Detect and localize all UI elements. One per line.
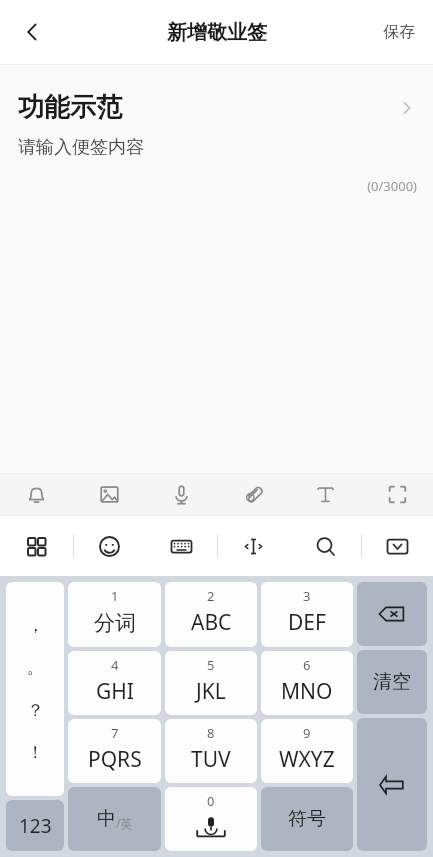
button[interactable]: Emoji <box>73 516 145 576</box>
staticText: /英 <box>116 815 133 831</box>
staticText: 6 <box>303 656 311 674</box>
staticText: 1 <box>111 587 119 605</box>
button[interactable]: Grid <box>0 516 73 576</box>
button[interactable]: 功能示范 <box>0 91 433 124</box>
button[interactable]: Cursor <box>217 516 289 576</box>
button[interactable]: Text format <box>289 474 361 515</box>
button[interactable]: 中 <box>68 787 161 851</box>
staticText: 3 <box>303 587 311 605</box>
button[interactable]: Image <box>73 474 145 515</box>
staticText: ， <box>27 615 44 636</box>
button[interactable]: Keyboard <box>145 516 217 576</box>
staticText: ABC <box>191 608 232 637</box>
staticText: 2 <box>207 587 215 605</box>
staticText: 保存 <box>383 22 415 42</box>
button[interactable]: 1 <box>68 582 161 647</box>
button[interactable]: 7 <box>68 719 161 783</box>
staticText: DEF <box>288 608 326 637</box>
staticText: 请输入便签内容 <box>18 136 144 159</box>
staticText: 123 <box>19 813 52 839</box>
button[interactable]: Search <box>289 516 361 576</box>
button[interactable]: Enter <box>357 718 427 851</box>
button[interactable]: 2 <box>165 582 257 647</box>
button[interactable]: 9 <box>261 719 353 783</box>
staticText: 符号 <box>288 807 326 831</box>
button[interactable]: 保存 <box>365 0 433 64</box>
button[interactable]: 清空 <box>357 650 427 714</box>
button[interactable]: 6 <box>261 651 353 715</box>
staticText: 清空 <box>373 670 411 694</box>
staticText: 新增敬业签 <box>167 20 267 45</box>
staticText: JKL <box>196 677 226 706</box>
button[interactable]: 符号 <box>261 787 353 851</box>
button[interactable]: 123 <box>6 800 64 851</box>
staticText: PQRS <box>88 745 142 774</box>
staticText: ？ <box>27 700 44 721</box>
button[interactable]: Attachment <box>217 474 289 515</box>
staticText: (0/3000) <box>0 177 417 195</box>
staticText: WXYZ <box>279 745 335 774</box>
staticText: MNO <box>281 677 333 706</box>
button[interactable]: Reminder <box>0 474 73 515</box>
button[interactable]: Voice <box>145 474 217 515</box>
button[interactable]: Fullscreen <box>361 474 433 515</box>
staticText: 。 <box>27 657 44 678</box>
staticText: GHI <box>96 677 134 706</box>
staticText: 9 <box>303 724 311 742</box>
staticText: 4 <box>111 656 119 674</box>
button[interactable]: Backspace <box>357 582 427 646</box>
button[interactable]: 0 <box>165 787 257 851</box>
button[interactable]: Back <box>6 6 58 58</box>
staticText: 中 <box>97 807 116 831</box>
button[interactable]: 8 <box>165 719 257 783</box>
button[interactable]: 3 <box>261 582 353 647</box>
staticText: 5 <box>207 656 215 674</box>
staticText: ！ <box>27 742 44 763</box>
staticText: 功能示范 <box>18 91 399 124</box>
staticText: 分词 <box>94 610 136 636</box>
button[interactable]: 5 <box>165 651 257 715</box>
button[interactable]: Hide keyboard <box>361 516 433 576</box>
button[interactable]: 4 <box>68 651 161 715</box>
staticText: TUV <box>191 745 231 774</box>
staticText: 8 <box>207 724 215 742</box>
button[interactable]: ， <box>6 582 64 796</box>
staticText: 0 <box>207 792 215 810</box>
staticText: 7 <box>111 724 119 742</box>
